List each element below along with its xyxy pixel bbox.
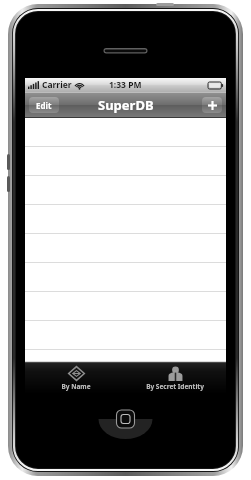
button[interactable]: [25, 321, 226, 350]
staticText: By Name: [61, 382, 91, 391]
button[interactable]: [25, 147, 226, 176]
staticText: Carrier: [42, 79, 72, 91]
button[interactable]: [25, 205, 226, 234]
button[interactable]: [25, 176, 226, 205]
button[interactable]: [25, 263, 226, 292]
staticText: 1:33 PM: [109, 79, 142, 91]
staticText: By Secret Identity: [146, 382, 204, 391]
button[interactable]: [25, 234, 226, 263]
staticText: Edit: [36, 100, 52, 111]
button[interactable]: [25, 350, 226, 362]
button[interactable]: Sort by secret identity: [127, 362, 223, 394]
button[interactable]: Sort by name: [28, 362, 124, 394]
button[interactable]: Add: [202, 97, 222, 113]
staticText: SuperDB: [98, 96, 154, 114]
button[interactable]: [25, 292, 226, 321]
button[interactable]: Edit: [29, 97, 59, 113]
button[interactable]: [25, 118, 226, 147]
